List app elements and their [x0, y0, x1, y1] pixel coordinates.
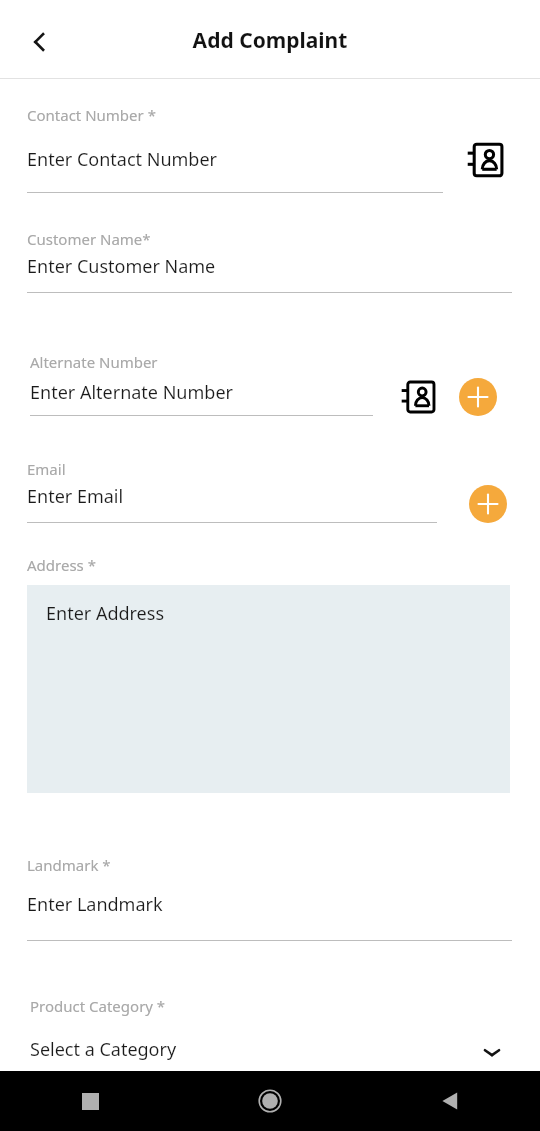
button[interactable]: Open category dropdown	[470, 1030, 514, 1074]
button[interactable]: Back	[14, 16, 66, 68]
staticText: Email	[27, 459, 66, 479]
staticText: Enter Alternate Number	[30, 380, 233, 405]
button[interactable]: Add	[459, 378, 497, 416]
button[interactable]: Enter Address	[27, 585, 510, 793]
button[interactable]: Add	[469, 485, 507, 523]
staticText: Enter Contact Number	[27, 147, 217, 172]
staticText: Enter Customer Name	[27, 254, 216, 279]
staticText: Alternate Number	[30, 352, 158, 372]
button[interactable]: Recent apps	[0, 1071, 180, 1131]
button[interactable]: Back	[360, 1071, 540, 1131]
staticText: Contact Number *	[27, 105, 156, 125]
button[interactable]: Home	[180, 1071, 360, 1131]
staticText: Enter Email	[27, 484, 124, 509]
staticText: Enter Address	[46, 601, 165, 626]
button[interactable]: Pick contact	[462, 137, 508, 183]
staticText: Landmark *	[27, 855, 111, 875]
staticText: Add Complaint	[0, 26, 540, 55]
button[interactable]: Pick alternate contact	[396, 375, 440, 419]
staticText: Customer Name*	[27, 229, 151, 249]
staticText: Product Category *	[30, 996, 166, 1016]
staticText: Enter Landmark	[27, 892, 163, 917]
staticText: Select a Category	[30, 1037, 177, 1062]
staticText: Address *	[27, 555, 96, 575]
